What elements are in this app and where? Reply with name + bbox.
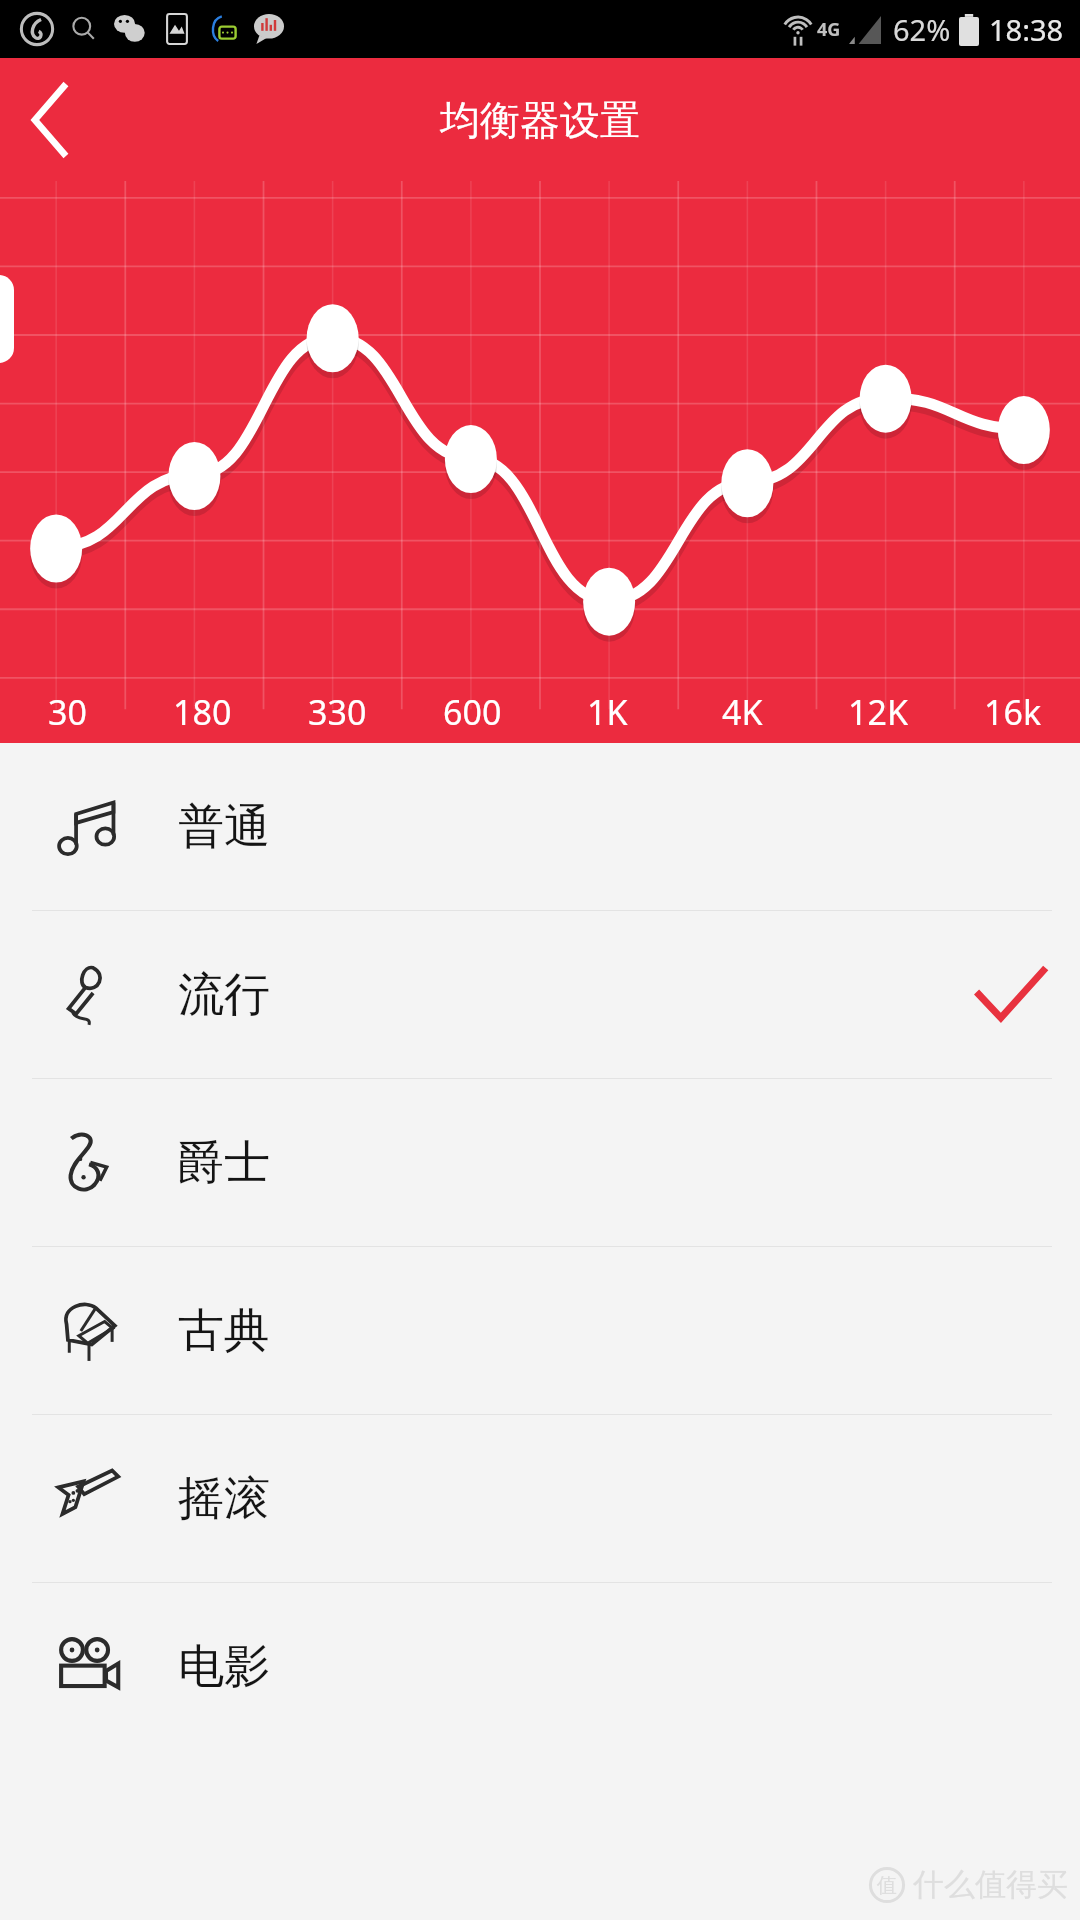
button[interactable]: 流行 — [0, 911, 1080, 1078]
staticText: 电影 — [178, 1638, 270, 1696]
staticText: 摇滚 — [178, 1470, 270, 1528]
button[interactable]: 摇滚 — [0, 1415, 1080, 1582]
staticText: 爵士 — [178, 1134, 270, 1192]
button[interactable]: 爵士 — [0, 1079, 1080, 1246]
staticText: 古典 — [178, 1302, 270, 1360]
staticText: 18:38 — [989, 10, 1064, 49]
button[interactable]: Open drawer — [0, 275, 14, 363]
staticText: 600 — [443, 689, 502, 735]
staticText: 均衡器设置 — [440, 95, 640, 145]
staticText: 330 — [308, 689, 367, 735]
button[interactable]: Back — [0, 70, 100, 170]
staticText: 12K — [848, 689, 908, 735]
staticText: 62% — [893, 10, 951, 49]
staticText: 4G — [817, 17, 841, 42]
button[interactable]: 古典 — [0, 1247, 1080, 1414]
staticText: 普通 — [178, 798, 270, 856]
staticText: 30 — [48, 689, 87, 735]
staticText: 什么值得买 — [913, 1865, 1068, 1904]
staticText: 1K — [587, 689, 628, 735]
button[interactable]: 电影 — [0, 1583, 1080, 1750]
staticText: 180 — [173, 689, 232, 735]
staticText: 流行 — [178, 966, 270, 1024]
staticText: 16k — [984, 689, 1042, 735]
staticText: 4K — [722, 689, 763, 735]
staticText: 值 — [877, 1873, 897, 1898]
button[interactable]: 普通 — [0, 743, 1080, 910]
